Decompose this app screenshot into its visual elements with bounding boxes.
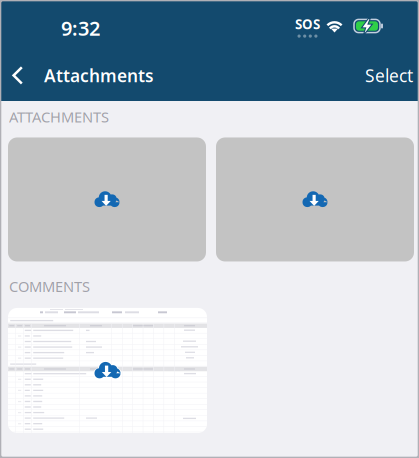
staticText: SOS <box>295 15 320 33</box>
staticText: ATTACHMENTS <box>9 107 109 126</box>
staticText: Attachments <box>44 64 154 87</box>
staticText: 9:32 <box>61 15 100 41</box>
button[interactable]: Download attachment <box>216 137 414 261</box>
button[interactable]: Select <box>357 56 419 95</box>
button[interactable]: Attachments <box>0 64 162 87</box>
staticText: COMMENTS <box>9 276 90 296</box>
button[interactable]: Download comments document <box>8 308 207 433</box>
staticText: Select <box>365 64 413 87</box>
button[interactable]: Download attachment <box>8 137 206 261</box>
